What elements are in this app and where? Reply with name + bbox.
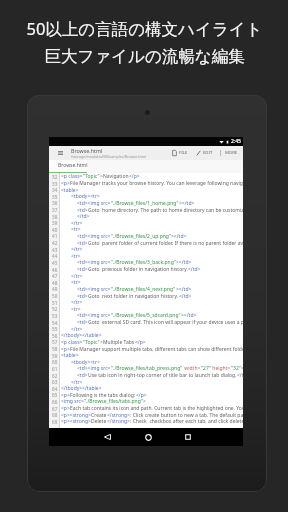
- staticText: <table>: [61, 187, 79, 194]
- staticText: 33: [52, 181, 58, 187]
- staticText: ></td>: [241, 365, 243, 372]
- staticText: 49: [52, 286, 58, 292]
- staticText: <tr>: [71, 279, 81, 286]
- staticText: </tr>: [71, 379, 83, 386]
- staticText: Goto parent folder of current folder. If…: [88, 240, 243, 247]
- staticText: "./Browse_files/1_home.png": [111, 200, 179, 207]
- staticText: <td><img src=: [77, 365, 111, 372]
- staticText: </tr>: [71, 273, 83, 280]
- staticText: height=: [211, 365, 231, 372]
- staticText: FILE: [179, 150, 188, 156]
- staticText: width=: [183, 365, 201, 372]
- staticText: <td><img src=: [77, 200, 111, 207]
- staticText: 40: [52, 227, 58, 233]
- staticText: 58: [52, 346, 58, 352]
- staticText: 57: [52, 339, 58, 345]
- staticText: 52: [52, 306, 58, 312]
- staticText: 32: [52, 174, 58, 180]
- staticText: 64: [52, 386, 58, 392]
- staticText: <td>: [77, 293, 88, 300]
- staticText: 39: [52, 220, 58, 226]
- staticText: 56: [52, 333, 58, 339]
- button[interactable]: Home: [137, 428, 159, 446]
- staticText: ></td>: [179, 200, 195, 207]
- staticText: Goto previous folder in navigation histo…: [88, 266, 188, 273]
- staticText: 36: [52, 200, 58, 206]
- staticText: <td><img src=: [77, 233, 111, 240]
- staticText: Navigation: [103, 173, 129, 180]
- staticText: : Check checkbox after each tab, and cli…: [130, 418, 243, 425]
- staticText: "32": [231, 365, 241, 372]
- staticText: : Click create button to new a tab. The …: [130, 412, 243, 419]
- staticText: </p>: [129, 173, 140, 180]
- staticText: 50: [52, 293, 58, 299]
- staticText: 68: [52, 412, 58, 418]
- staticText: 42: [52, 240, 58, 246]
- staticText: "Topic": [83, 339, 100, 346]
- button[interactable]: MORE: [216, 146, 240, 160]
- staticText: 62: [52, 373, 58, 379]
- staticText: 69: [52, 419, 58, 425]
- staticText: <td>: [77, 372, 88, 379]
- staticText: 47: [52, 273, 58, 279]
- staticText: 35: [52, 194, 58, 200]
- button[interactable]: Back: [96, 428, 118, 446]
- staticText: </strong>: [107, 418, 130, 425]
- staticText: Browse.html: [71, 147, 103, 154]
- staticText: 60: [52, 359, 58, 365]
- staticText: </p>: [136, 392, 147, 399]
- staticText: </td>: [237, 372, 243, 379]
- staticText: "Topic": [83, 173, 100, 180]
- staticText: ></td>: [171, 233, 187, 240]
- staticText: </td>: [77, 213, 90, 220]
- staticText: File Manager tracks your browse history.…: [70, 180, 243, 187]
- staticText: <tr>: [71, 306, 81, 313]
- button[interactable]: Recent apps: [177, 428, 199, 446]
- staticText: <td>: [77, 207, 88, 214]
- staticText: <p class=: [61, 339, 83, 346]
- staticText: "./Browse_files/tab_press.png": [111, 365, 183, 372]
- staticText: Goto home directory. The path to home di…: [88, 207, 243, 214]
- staticText: <p>: [61, 392, 70, 399]
- button[interactable]: FILE: [168, 146, 192, 160]
- staticText: 55: [52, 326, 58, 332]
- staticText: <table>: [61, 352, 79, 359]
- staticText: 51: [52, 300, 58, 306]
- staticText: 37: [52, 207, 58, 213]
- staticText: /storage/emulated/0/Examples/Browse.html: [71, 154, 147, 159]
- staticText: 54: [52, 320, 58, 326]
- staticText: 61: [52, 366, 58, 372]
- staticText: Goto next folder in navigation history.: [88, 293, 179, 300]
- staticText: Multiple Tabs: [103, 339, 135, 346]
- staticText: 65: [52, 392, 58, 398]
- staticText: ></td>: [181, 312, 197, 319]
- staticText: </tbody></table>: [61, 332, 102, 339]
- button[interactable]: EDIT: [192, 146, 216, 160]
- staticText: 43: [52, 247, 58, 253]
- staticText: "./Browse_files/4_next.png": [111, 286, 176, 293]
- staticText: "27": [201, 365, 211, 372]
- staticText: <p>: [61, 180, 70, 187]
- staticText: ></td>: [176, 286, 192, 293]
- staticText: <p>: [61, 405, 70, 412]
- staticText: Create: [91, 412, 107, 419]
- staticText: <p><strong>: [61, 412, 91, 419]
- staticText: 41: [52, 233, 58, 239]
- staticText: >: [100, 339, 103, 346]
- staticText: Each tab contains its icon and path. Cur…: [70, 405, 243, 412]
- button[interactable]: Open navigation menu: [49, 146, 71, 160]
- staticText: <td>: [77, 319, 88, 326]
- staticText: 45: [52, 260, 58, 266]
- button[interactable]: Browse.html: [49, 160, 87, 173]
- staticText: Delete: [91, 418, 107, 425]
- staticText: "./Browse_files/3_back.png": [111, 259, 176, 266]
- staticText: <tr>: [71, 253, 81, 260]
- staticText: MORE: [225, 150, 238, 156]
- staticText: </tr>: [71, 220, 83, 227]
- staticText: "./Browse_files/5_sdcard.png": [111, 312, 181, 319]
- staticText: 2:45: [231, 138, 241, 145]
- staticText: "./Browse_files/tabs.png": [84, 398, 143, 405]
- staticText: 46: [52, 267, 58, 273]
- staticText: 63: [52, 379, 58, 385]
- staticText: ></td>: [176, 259, 192, 266]
